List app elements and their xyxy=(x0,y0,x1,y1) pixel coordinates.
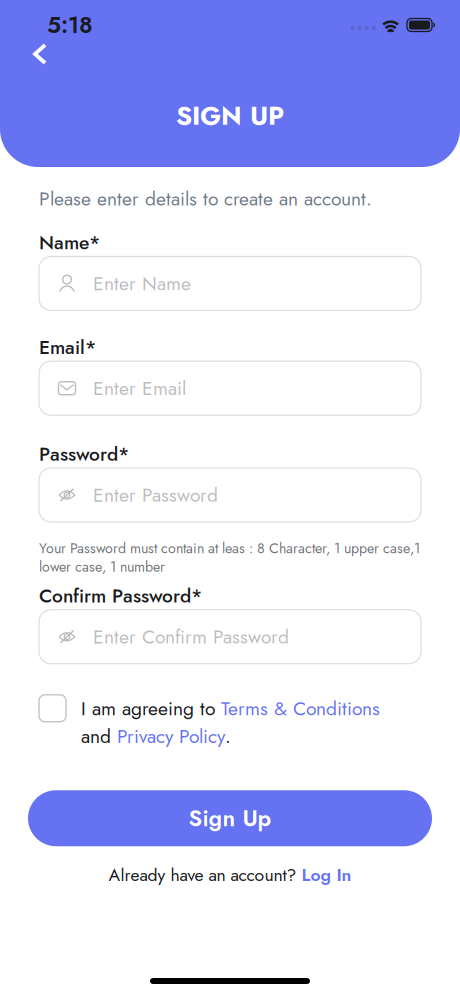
button[interactable]: Terms & Conditions xyxy=(221,695,380,722)
button[interactable]: Back xyxy=(23,37,57,71)
staticText: Your Password must contain at leas : 8 C… xyxy=(39,538,420,577)
staticText: . xyxy=(225,722,231,750)
button[interactable]: Privacy Policy xyxy=(117,722,225,750)
button[interactable]: Enter Confirm Password xyxy=(39,610,421,664)
staticText: Enter Name xyxy=(93,270,191,297)
staticText: Sign Up xyxy=(188,802,271,835)
staticText: Password* xyxy=(39,440,129,468)
button[interactable]: Agree to terms and conditions xyxy=(39,695,66,722)
staticText: Privacy Policy xyxy=(117,722,225,750)
button[interactable]: Enter Name xyxy=(39,256,421,310)
staticText: and xyxy=(81,722,117,750)
staticText: Enter Email xyxy=(93,374,186,402)
staticText: SIGN UP xyxy=(176,97,284,135)
staticText: I am agreeing to xyxy=(81,695,221,722)
staticText: Name* xyxy=(39,229,100,256)
button[interactable]: Log In xyxy=(301,862,351,888)
staticText: Please enter details to create an accoun… xyxy=(39,185,372,213)
staticText: Log In xyxy=(301,862,351,888)
staticText: Confirm Password* xyxy=(39,582,202,610)
button[interactable]: Enter Password xyxy=(39,468,421,522)
button[interactable]: Enter Email xyxy=(39,361,421,415)
button[interactable]: Sign Up xyxy=(28,790,432,846)
staticText: Email* xyxy=(39,333,96,361)
staticText: Already have an account? xyxy=(108,862,301,888)
staticText: Enter Password xyxy=(93,481,218,509)
staticText: Terms & Conditions xyxy=(221,695,380,722)
staticText: Enter Confirm Password xyxy=(93,623,289,651)
staticText: 5:18 xyxy=(47,9,93,41)
